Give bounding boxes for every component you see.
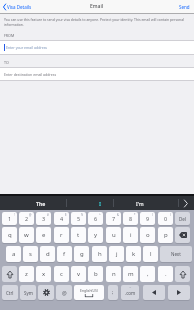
staticText: Next [171, 251, 181, 257]
staticText: Ctrl [6, 290, 14, 296]
staticText: i [130, 231, 132, 239]
staticText: j [116, 250, 118, 258]
staticText: n [112, 270, 116, 278]
staticText: z [25, 270, 28, 278]
staticText: y [94, 231, 98, 239]
staticText: p [164, 231, 168, 239]
staticText: a [12, 250, 16, 258]
staticText: d [46, 250, 50, 258]
staticText: 4 [60, 215, 64, 222]
staticText: 7 [112, 215, 116, 222]
staticText: % [81, 213, 84, 217]
staticText: 1 [8, 215, 12, 222]
staticText: g [80, 250, 84, 258]
staticText: ( [152, 213, 153, 217]
staticText: I [99, 200, 102, 207]
staticText: 9 [146, 215, 150, 222]
staticText: m [128, 270, 134, 278]
staticText: k [132, 250, 136, 258]
staticText: information. [4, 22, 24, 27]
staticText: 6 [94, 215, 98, 222]
staticText: I'm [136, 200, 144, 207]
staticText: Enter destination email address [4, 72, 57, 77]
staticText: u [112, 231, 116, 239]
staticText: Send [179, 4, 190, 10]
staticText: c [60, 270, 63, 278]
staticText: ) [170, 213, 171, 217]
staticText: h [98, 250, 102, 258]
staticText: , [147, 270, 149, 278]
staticText: w [24, 231, 29, 239]
staticText: t [77, 231, 80, 239]
staticText: Email [90, 3, 104, 10]
staticText: e [42, 231, 46, 239]
staticText: o [146, 231, 150, 239]
staticText: ! [14, 213, 15, 217]
staticText: 5 [77, 215, 81, 222]
staticText: x [42, 270, 46, 278]
staticText: r [60, 231, 63, 239]
staticText: @ [62, 289, 67, 296]
staticText: l [150, 250, 152, 258]
staticText: s [29, 250, 32, 258]
staticText: English(US) [80, 288, 98, 293]
staticText: f [63, 250, 66, 258]
staticText: ^ [99, 213, 101, 217]
staticText: Visa Details [7, 4, 32, 10]
staticText: # [47, 213, 49, 217]
staticText: TO [4, 60, 9, 65]
staticText: You can use this feature to send your vi… [4, 17, 184, 22]
staticText: Sym [24, 290, 33, 296]
staticText: . [165, 270, 167, 278]
staticText: The [36, 200, 46, 207]
staticText: .com [125, 290, 136, 296]
staticText: @ [29, 213, 32, 217]
staticText: 8 [129, 215, 133, 222]
staticText: 0 [164, 215, 168, 222]
staticText: ; [112, 289, 114, 296]
staticText: v [77, 270, 81, 278]
staticText: $ [65, 213, 67, 217]
staticText: q [8, 231, 12, 239]
staticText: 3 [42, 215, 46, 222]
staticText: FROM [4, 33, 15, 38]
staticText: b [94, 270, 98, 278]
staticText: & [117, 213, 119, 217]
staticText: Enter your email address [6, 45, 48, 50]
staticText: 2 [25, 215, 29, 222]
staticText: Del [179, 216, 186, 222]
staticText: ... [129, 285, 132, 289]
staticText: * [134, 213, 136, 217]
